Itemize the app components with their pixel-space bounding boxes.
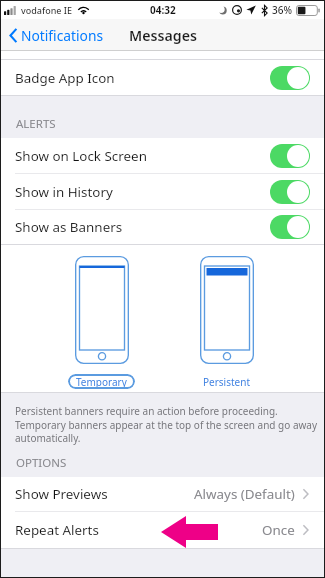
button[interactable]: Toggle on <box>270 215 310 239</box>
button[interactable]: Toggle on <box>270 66 310 90</box>
staticText: Show Previews <box>15 485 108 503</box>
staticText: Persistent banners require an action bef… <box>15 404 323 445</box>
staticText: Badge App Icon <box>15 69 115 87</box>
staticText: Always (Default) <box>194 485 295 503</box>
button[interactable]: Show on Lock Screen <box>0 138 325 173</box>
staticText: ALERTS <box>16 116 56 132</box>
staticText: Once <box>262 521 295 539</box>
staticText: Show in History <box>15 183 113 201</box>
staticText: Show on Lock Screen <box>15 147 147 165</box>
staticText: 04:32 <box>150 3 176 17</box>
button[interactable]: Toggle on <box>270 180 310 204</box>
button[interactable]: Temporary <box>68 245 135 389</box>
staticText: Messages <box>129 26 197 45</box>
staticText: Notifications <box>21 26 104 45</box>
button[interactable]: Show as Banners <box>0 210 325 244</box>
button[interactable]: Persistent <box>195 245 259 389</box>
button[interactable]: Show in History <box>0 174 325 209</box>
button[interactable]: Toggle on <box>270 144 310 168</box>
staticText: OPTIONS <box>16 455 67 471</box>
staticText: Persistent <box>203 375 251 389</box>
button[interactable]: Notifications <box>0 22 110 49</box>
staticText: Repeat Alerts <box>15 521 99 539</box>
button[interactable]: Show Previews <box>0 477 325 511</box>
staticText: Show as Banners <box>15 218 123 236</box>
staticText: vodafone IE <box>21 4 73 16</box>
staticText: Temporary <box>76 375 127 389</box>
staticText: 36% <box>272 3 292 17</box>
button[interactable]: Repeat Alerts <box>0 512 325 548</box>
button[interactable]: Badge App Icon <box>0 60 325 95</box>
